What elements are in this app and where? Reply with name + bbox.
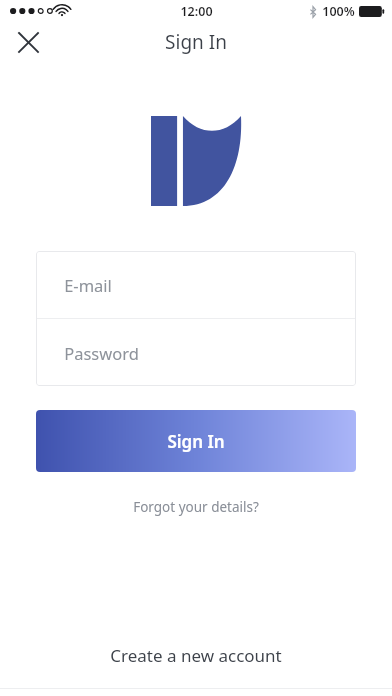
button[interactable]: Close bbox=[8, 22, 48, 62]
staticText: Sign In bbox=[165, 29, 227, 55]
staticText: Forgot your details? bbox=[133, 498, 259, 516]
button[interactable]: Sign In bbox=[36, 410, 356, 472]
staticText: Create a new account bbox=[110, 644, 282, 667]
button[interactable]: Create a new account bbox=[0, 622, 392, 688]
staticText: Sign In bbox=[167, 430, 225, 453]
button[interactable]: Forgot your details? bbox=[121, 494, 271, 520]
staticText: 12:00 bbox=[180, 3, 213, 20]
staticText: Password bbox=[64, 342, 139, 364]
staticText: E-mail bbox=[64, 274, 112, 296]
button[interactable]: E-mail bbox=[36, 251, 356, 318]
button[interactable]: Password bbox=[36, 319, 356, 386]
staticText: 100% bbox=[322, 3, 355, 20]
